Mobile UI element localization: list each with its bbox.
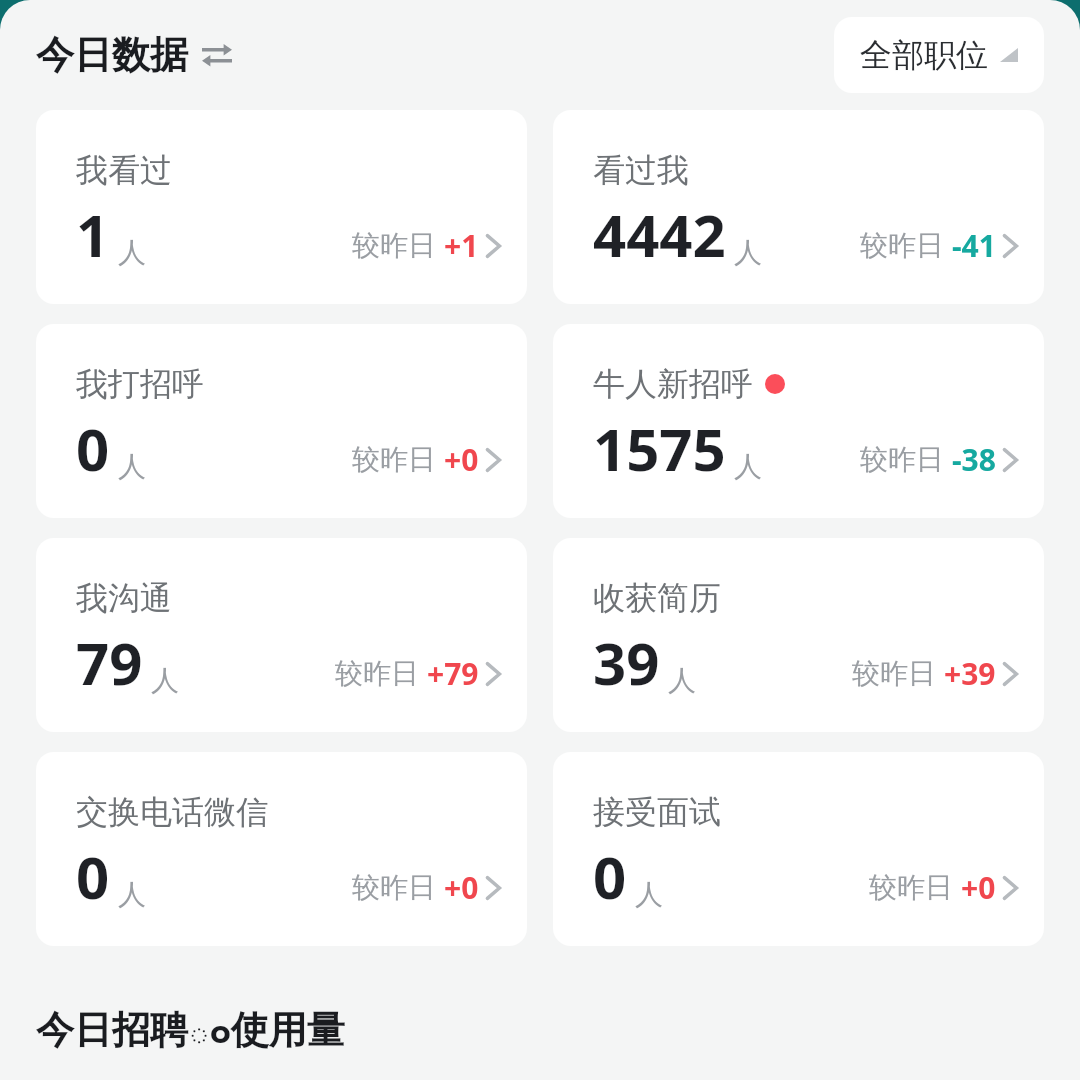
- staticText: 4442: [593, 195, 726, 274]
- staticText: 39: [593, 623, 660, 702]
- staticText: 较昨日: [335, 656, 419, 691]
- button[interactable]: 牛人新招呼: [553, 324, 1044, 518]
- staticText: 人: [118, 449, 146, 484]
- button[interactable]: 我看过: [36, 110, 527, 304]
- staticText: 1: [76, 195, 110, 274]
- staticText: 较昨日: [860, 228, 944, 263]
- staticText: 交换电话微信: [76, 792, 268, 832]
- button[interactable]: 收获简历: [553, 538, 1044, 732]
- staticText: 我打招呼: [76, 364, 204, 404]
- button[interactable]: 看过我: [553, 110, 1044, 304]
- staticText: 人: [151, 663, 179, 698]
- staticText: +0: [961, 867, 996, 908]
- staticText: 全部职位: [860, 35, 988, 75]
- staticText: 今日数据: [36, 31, 188, 79]
- staticText: +79: [427, 653, 479, 694]
- staticText: -38: [952, 439, 996, 480]
- staticText: 接受面试: [593, 792, 721, 832]
- staticText: 人: [118, 235, 146, 270]
- staticText: 牛人新招呼: [593, 364, 753, 404]
- staticText: 人: [734, 449, 762, 484]
- staticText: 较昨日: [352, 442, 436, 477]
- staticText: +0: [444, 439, 479, 480]
- staticText: 1575: [593, 409, 726, 488]
- staticText: 人: [668, 663, 696, 698]
- staticText: 79: [76, 623, 143, 702]
- staticText: 我看过: [76, 150, 172, 190]
- staticText: 0: [76, 837, 110, 916]
- other: 切换: [202, 42, 232, 68]
- button[interactable]: 今日数据: [36, 31, 232, 79]
- staticText: +1: [444, 225, 479, 266]
- staticText: 看过我: [593, 150, 689, 190]
- button[interactable]: 我沟通: [36, 538, 527, 732]
- staticText: +0: [444, 867, 479, 908]
- staticText: 今日招聘ం使用量: [36, 1006, 345, 1061]
- staticText: 较昨日: [352, 870, 436, 905]
- button[interactable]: 接受面试: [553, 752, 1044, 946]
- staticText: 人: [635, 877, 663, 912]
- staticText: 较昨日: [860, 442, 944, 477]
- staticText: 0: [593, 837, 627, 916]
- staticText: +39: [944, 653, 996, 694]
- staticText: -41: [952, 225, 996, 266]
- button[interactable]: 交换电话微信: [36, 752, 527, 946]
- staticText: 较昨日: [352, 228, 436, 263]
- staticText: 0: [76, 409, 110, 488]
- staticText: 人: [734, 235, 762, 270]
- button[interactable]: 全部职位: [834, 17, 1044, 93]
- button[interactable]: 我打招呼: [36, 324, 527, 518]
- staticText: 我沟通: [76, 578, 172, 618]
- staticText: 较昨日: [852, 656, 936, 691]
- staticText: 人: [118, 877, 146, 912]
- staticText: 较昨日: [869, 870, 953, 905]
- staticText: 收获简历: [593, 578, 721, 618]
